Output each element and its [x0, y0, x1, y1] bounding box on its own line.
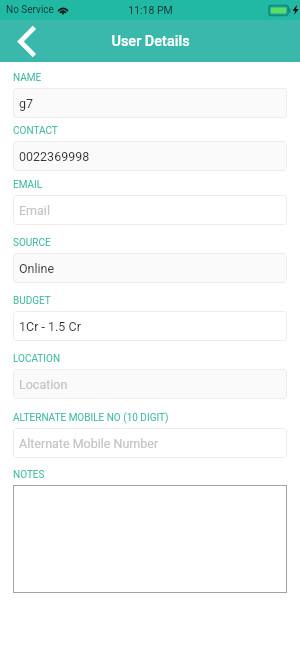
button[interactable]: Back: [8, 22, 46, 60]
staticText: ALTERNATE MOBILE NO (10 DIGIT): [13, 412, 169, 424]
staticText: Alternate Mobile Number: [19, 436, 159, 451]
staticText: 11:18 PM: [128, 4, 173, 16]
staticText: Email: [19, 203, 50, 218]
button[interactable]: Email: [13, 195, 287, 225]
button[interactable]: 0022369998: [13, 141, 287, 171]
staticText: Location: [19, 377, 68, 392]
staticText: BUDGET: [13, 295, 51, 307]
staticText: SOURCE: [13, 237, 51, 249]
button[interactable]: g7: [13, 88, 287, 118]
staticText: User Details: [111, 33, 190, 50]
staticText: CONTACT: [13, 125, 58, 137]
staticText: NOTES: [13, 469, 45, 481]
staticText: Online: [19, 261, 55, 276]
staticText: LOCATION: [13, 353, 61, 365]
staticText: EMAIL: [13, 179, 43, 191]
button[interactable]: [13, 485, 287, 593]
staticText: g7: [19, 96, 34, 111]
staticText: No Service: [6, 4, 54, 16]
staticText: 0022369998: [19, 149, 90, 164]
staticText: NAME: [13, 72, 42, 84]
button[interactable]: Online: [13, 253, 287, 283]
button[interactable]: Alternate Mobile Number: [13, 428, 287, 458]
staticText: 1Cr - 1.5 Cr: [19, 319, 81, 334]
button[interactable]: Location: [13, 369, 287, 399]
button[interactable]: 1Cr - 1.5 Cr: [13, 311, 287, 341]
